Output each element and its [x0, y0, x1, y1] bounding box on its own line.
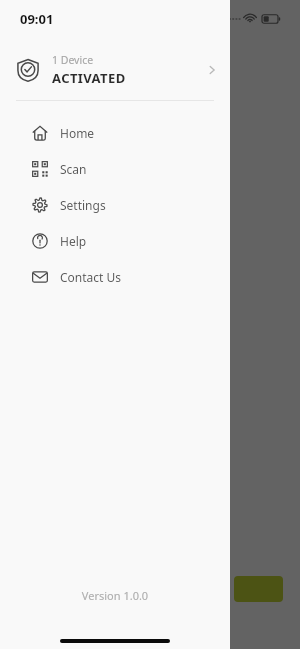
staticText: Home [60, 125, 95, 141]
button[interactable]: Home [0, 115, 230, 151]
staticText: Version 1.0.0 [0, 588, 230, 603]
button[interactable]: Help [0, 223, 230, 259]
staticText: ACTIVATED [52, 69, 126, 87]
button[interactable]: 1 Device [0, 46, 230, 94]
button[interactable]: Scan [0, 151, 230, 187]
staticText: 09:01 [20, 10, 54, 28]
button[interactable]: Contact Us [0, 259, 230, 295]
staticText: Scan [60, 161, 87, 177]
staticText: 1 Device [52, 53, 94, 67]
button[interactable]: Settings [0, 187, 230, 223]
staticText: Settings [60, 197, 106, 213]
staticText: Contact Us [60, 269, 122, 285]
other: Device details [206, 64, 218, 76]
staticText: Help [60, 233, 87, 249]
